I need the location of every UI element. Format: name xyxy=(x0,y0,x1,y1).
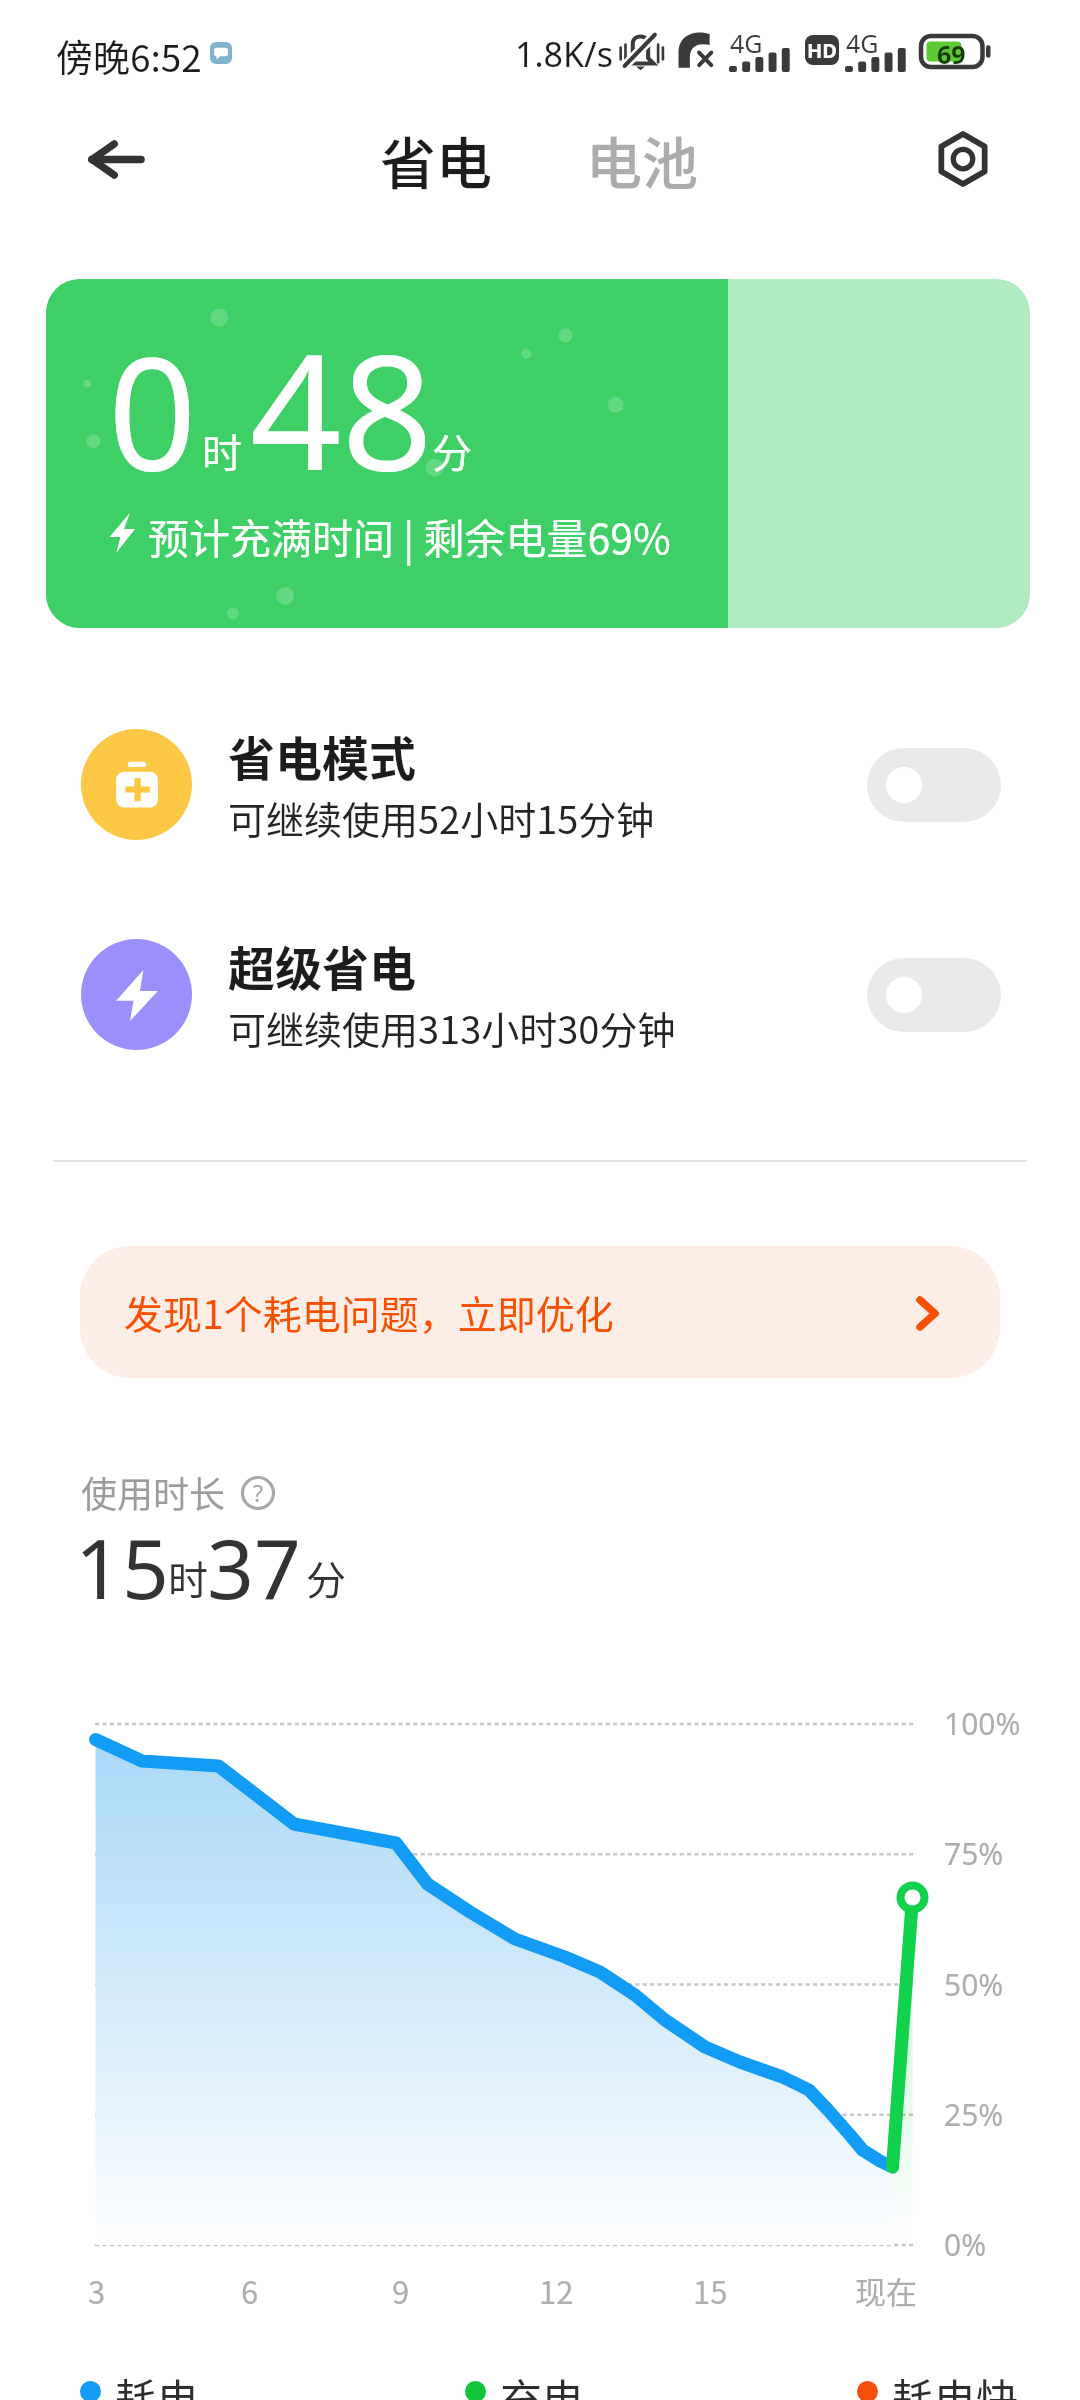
button[interactable]: 超级省电 xyxy=(0,939,1080,1050)
staticText: 4G xyxy=(846,26,879,60)
staticText: 分 xyxy=(432,422,472,480)
staticText: 使用时长 xyxy=(81,1466,226,1518)
staticText: ? xyxy=(253,1477,263,1508)
staticText: 省电 xyxy=(380,119,492,200)
staticText: 100% xyxy=(944,1703,1021,1744)
staticText: 发现1个耗电问题，立即优化 xyxy=(124,1284,614,1340)
staticText: 超级省电 xyxy=(228,931,416,999)
button[interactable]: 0 xyxy=(46,279,1030,628)
staticText: 6 xyxy=(241,2268,259,2313)
button[interactable]: 省电模式 xyxy=(0,729,1080,840)
staticText: 可继续使用313小时30分钟 xyxy=(228,1000,676,1055)
staticText: 0% xyxy=(944,2224,987,2265)
staticText: 9 xyxy=(392,2268,410,2313)
staticText: 耗电快 xyxy=(892,2366,1019,2400)
button[interactable]: Toggle 省电模式 xyxy=(867,748,1001,822)
staticText: 75% xyxy=(944,1833,1004,1874)
staticText: 69 xyxy=(937,37,966,71)
staticText: 1.8K/s xyxy=(515,31,613,77)
button[interactable]: Toggle 超级省电 xyxy=(867,958,1001,1032)
staticText: 预计充满时间 | 剩余电量69% xyxy=(148,506,671,565)
staticText: 充电 xyxy=(500,2366,585,2400)
staticText: 3 xyxy=(88,2268,106,2313)
button[interactable]: Settings xyxy=(925,121,1001,197)
staticText: HD xyxy=(807,37,837,64)
staticText: 可继续使用52小时15分钟 xyxy=(228,790,655,845)
staticText: 分 xyxy=(306,1549,346,1607)
staticText: 50% xyxy=(944,1964,1004,2005)
staticText: 时 xyxy=(168,1549,208,1607)
button[interactable]: Back xyxy=(76,119,156,199)
button[interactable]: Help xyxy=(236,1471,280,1515)
staticText: 0 xyxy=(108,304,197,515)
staticText: 37 xyxy=(207,1511,301,1623)
staticText: 傍晚6:52 xyxy=(56,29,202,83)
staticText: 现在 xyxy=(855,2268,917,2313)
button[interactable]: 省电 xyxy=(372,109,500,210)
staticText: 25% xyxy=(944,2094,1004,2135)
staticText: 电池 xyxy=(586,119,698,200)
staticText: 4G xyxy=(730,26,763,60)
staticText: 15 xyxy=(75,1511,169,1623)
staticText: 48 xyxy=(250,299,434,517)
staticText: 时 xyxy=(202,422,242,480)
button[interactable]: 电池 xyxy=(578,109,706,210)
staticText: 耗电 xyxy=(115,2366,200,2400)
staticText: 省电模式 xyxy=(228,721,416,789)
button[interactable]: 发现1个耗电问题，立即优化 xyxy=(80,1246,1000,1378)
staticText: 15 xyxy=(693,2268,728,2313)
staticText: 12 xyxy=(539,2268,574,2313)
